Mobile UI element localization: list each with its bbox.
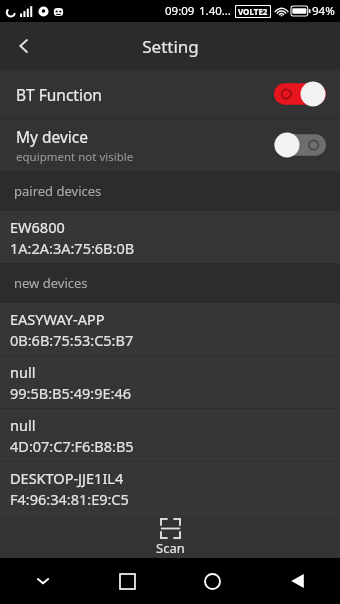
button[interactable]: Toggle off: [274, 132, 326, 158]
button[interactable]: null: [0, 409, 340, 461]
staticText: equipment not visible: [16, 149, 134, 165]
button[interactable]: EW6800: [0, 211, 340, 263]
staticText: 09:09: [165, 3, 195, 19]
button[interactable]: Home: [170, 558, 255, 604]
button[interactable]: Toggle on: [274, 81, 326, 107]
staticText: null: [10, 415, 36, 435]
staticText: BT Function: [16, 84, 102, 105]
staticText: null: [10, 362, 36, 382]
staticText: 99:5B:B5:49:9E:46: [10, 383, 131, 403]
button[interactable]: null: [0, 356, 340, 408]
staticText: EASYWAY-APP: [10, 309, 105, 329]
staticText: VOLTE2: [238, 6, 268, 17]
button[interactable]: Back: [0, 22, 48, 70]
button[interactable]: Scan: [0, 517, 340, 558]
staticText: 94%: [312, 3, 335, 19]
staticText: My device: [16, 126, 89, 147]
button[interactable]: BT Function: [0, 70, 340, 118]
button[interactable]: Hide navigation bar: [0, 558, 85, 604]
staticText: new devices: [14, 274, 88, 292]
staticText: 1.40…: [199, 3, 231, 19]
staticText: 0B:6B:75:53:C5:B7: [10, 330, 134, 350]
button[interactable]: Back: [255, 558, 340, 604]
button[interactable]: DESKTOP-JJE1IL4: [0, 462, 340, 514]
staticText: DESKTOP-JJE1IL4: [10, 468, 124, 488]
staticText: Scan: [156, 539, 185, 557]
staticText: EW6800: [10, 217, 65, 237]
button[interactable]: Recent apps: [85, 558, 170, 604]
staticText: 4D:07:C7:F6:B8:B5: [10, 436, 134, 456]
staticText: Setting: [142, 35, 199, 58]
staticText: 1A:2A:3A:75:6B:0B: [10, 238, 135, 258]
button[interactable]: My device: [0, 119, 340, 171]
staticText: F4:96:34:81:E9:C5: [10, 489, 129, 509]
staticText: paired devices: [14, 182, 102, 200]
button[interactable]: EASYWAY-APP: [0, 303, 340, 355]
